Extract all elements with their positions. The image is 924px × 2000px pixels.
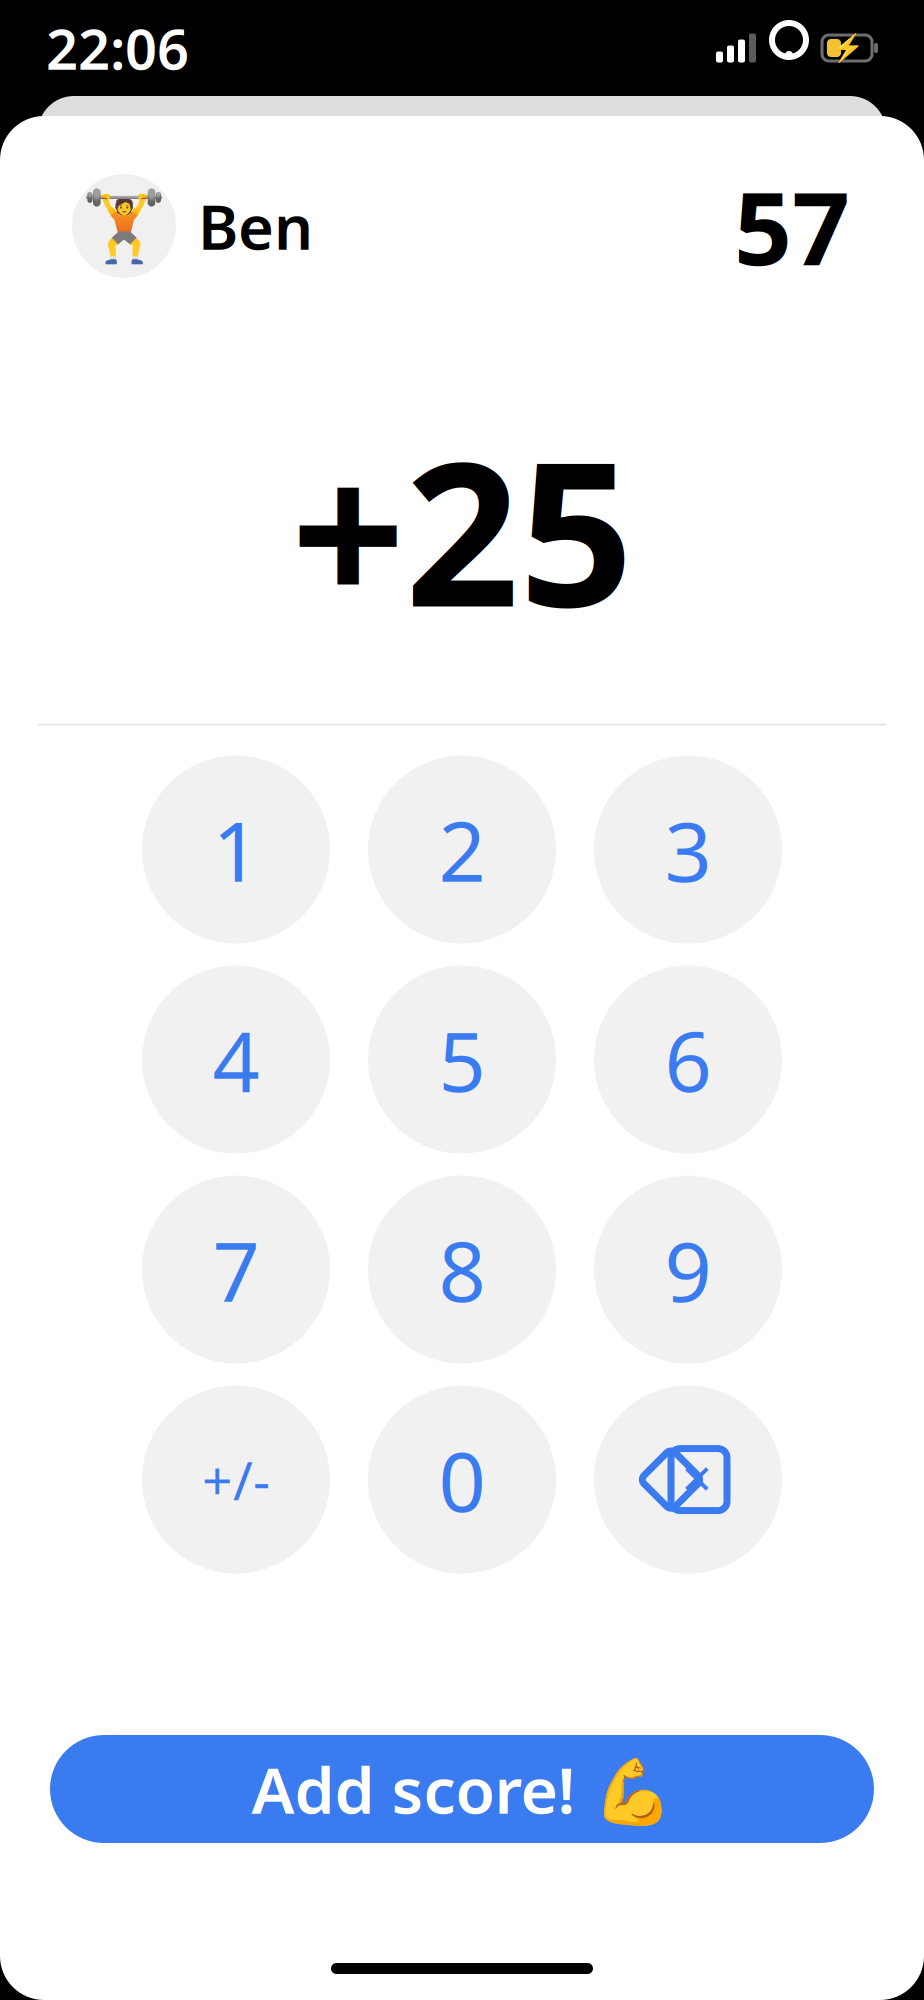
button[interactable]: 6	[594, 966, 782, 1154]
staticText: 2	[438, 795, 485, 904]
staticText: +/-	[202, 1444, 270, 1515]
staticText: 0	[438, 1425, 485, 1534]
button[interactable]: 7	[142, 1176, 330, 1364]
staticText: 3	[664, 795, 711, 904]
button[interactable]: +/-	[142, 1386, 330, 1574]
button[interactable]: Add score! 💪	[50, 1735, 874, 1843]
button[interactable]: 9	[594, 1176, 782, 1364]
button[interactable]: 5	[368, 966, 556, 1154]
staticText: 4	[212, 1005, 259, 1114]
staticText: Ben	[198, 185, 313, 267]
staticText: +25	[291, 396, 633, 662]
button[interactable]: 3	[594, 756, 782, 944]
button[interactable]: 2	[368, 756, 556, 944]
staticText: 8	[438, 1215, 485, 1324]
button[interactable]: 8	[368, 1176, 556, 1364]
button[interactable]: 1	[142, 756, 330, 944]
staticText: 9	[664, 1215, 711, 1324]
staticText: ⚡	[830, 33, 863, 63]
staticText: 22:06	[46, 11, 189, 85]
button[interactable]: 0	[368, 1386, 556, 1574]
button[interactable]: 4	[142, 966, 330, 1154]
staticText: 1	[212, 795, 259, 904]
staticText: 57	[734, 159, 850, 293]
button[interactable]: Delete	[594, 1386, 782, 1574]
staticText: 6	[664, 1005, 711, 1114]
staticText: 🏋️	[81, 186, 167, 266]
staticText: 7	[212, 1215, 259, 1324]
staticText: ✕	[680, 1457, 714, 1502]
staticText: Add score! 💪	[251, 1746, 672, 1831]
staticText: 5	[438, 1005, 485, 1114]
